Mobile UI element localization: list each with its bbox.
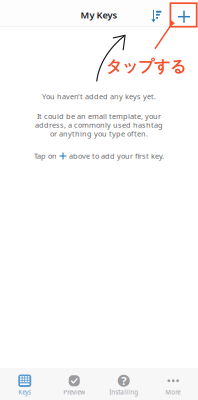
staticText: More xyxy=(165,388,181,396)
staticText: ? xyxy=(121,373,126,388)
staticText: My Keys xyxy=(80,9,117,21)
staticText: タップする xyxy=(106,56,186,77)
staticText: Preview xyxy=(63,388,85,396)
button[interactable]: ? xyxy=(99,368,148,400)
button[interactable]: Preview xyxy=(49,368,99,400)
button[interactable]: Add key xyxy=(171,3,197,30)
staticText: above to add your first key. xyxy=(69,151,164,161)
button[interactable]: More xyxy=(148,368,198,400)
staticText: or anything you type often. xyxy=(50,129,148,138)
staticText: address, a commonly used hashtag xyxy=(35,120,163,130)
staticText: Installing xyxy=(109,388,138,396)
staticText: Keys xyxy=(18,388,31,396)
staticText: Tap on xyxy=(34,151,57,161)
staticText: You haven't added any keys yet. xyxy=(42,92,156,101)
button[interactable]: Sort xyxy=(144,3,168,29)
button[interactable]: Keys xyxy=(0,368,49,400)
staticText: It could be an email template, your xyxy=(37,111,161,121)
